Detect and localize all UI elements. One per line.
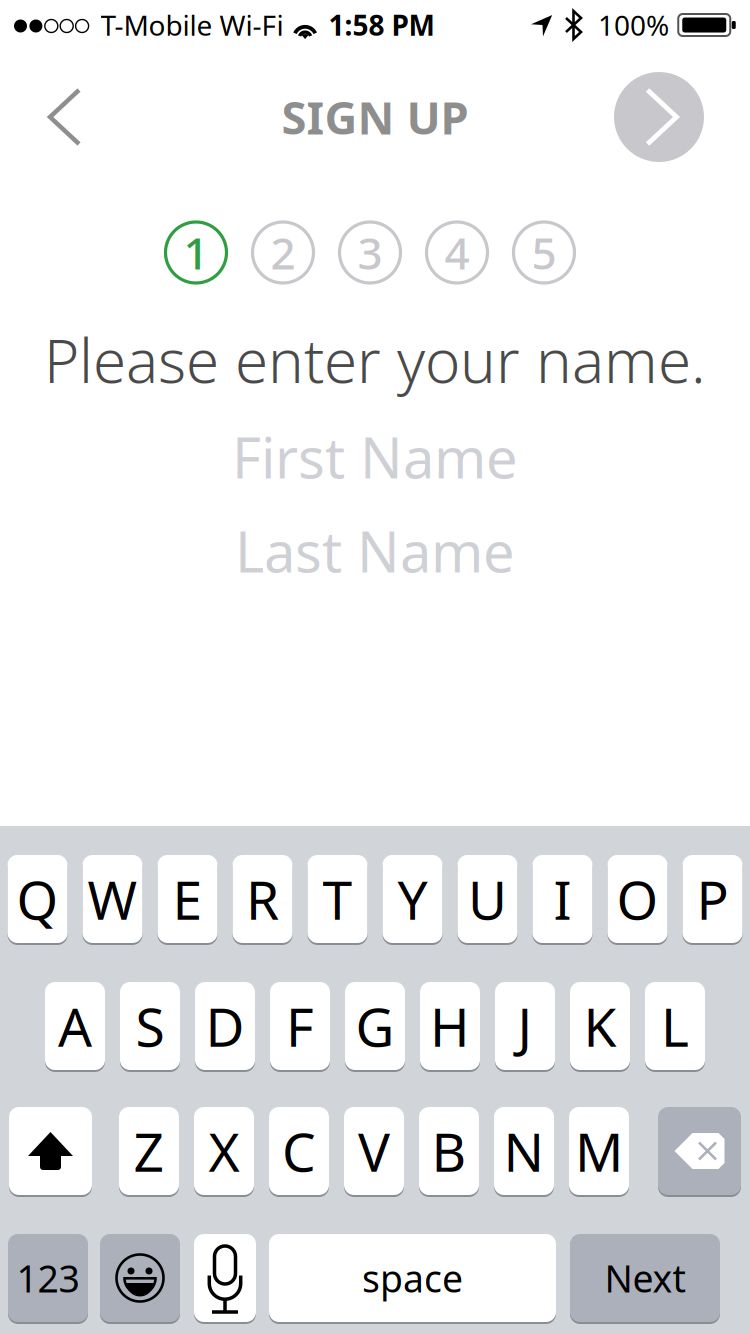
button[interactable]: A — [45, 981, 105, 1071]
button[interactable]: Shift — [9, 1106, 92, 1196]
staticText: M — [575, 1116, 623, 1186]
staticText: 4 — [444, 223, 469, 282]
staticText: R — [246, 864, 279, 934]
button[interactable]: Emoji — [100, 1233, 180, 1323]
button[interactable]: J — [495, 981, 555, 1071]
staticText: I — [553, 864, 571, 934]
staticText: 2 — [270, 223, 295, 282]
button[interactable]: Y — [382, 854, 442, 944]
button[interactable]: I — [532, 854, 592, 944]
staticText: 1 — [183, 223, 208, 282]
button[interactable]: U — [457, 854, 517, 944]
staticText: B — [431, 1116, 466, 1186]
staticText: P — [696, 864, 728, 934]
button[interactable]: space — [269, 1233, 556, 1323]
button[interactable]: Dictation — [194, 1233, 256, 1323]
staticText: E — [172, 864, 202, 934]
button[interactable]: W — [82, 854, 142, 944]
staticText: Y — [397, 864, 427, 934]
staticText: U — [468, 864, 507, 934]
button[interactable]: B — [419, 1106, 479, 1196]
button[interactable]: F — [270, 981, 330, 1071]
button[interactable]: Back — [0, 62, 150, 172]
staticText: T-Mobile Wi-Fi — [101, 6, 284, 44]
staticText: C — [282, 1116, 316, 1186]
button[interactable]: First Name — [0, 424, 750, 490]
button[interactable]: Delete — [658, 1106, 741, 1196]
button[interactable]: N — [494, 1106, 554, 1196]
staticText: S — [135, 991, 164, 1061]
button[interactable]: Step 4 — [426, 222, 487, 283]
button[interactable]: O — [607, 854, 667, 944]
button[interactable]: L — [645, 981, 705, 1071]
staticText: O — [616, 864, 658, 934]
button[interactable]: Next — [600, 62, 750, 172]
staticText: First Name — [232, 419, 518, 494]
staticText: space — [362, 1253, 463, 1303]
button[interactable]: T — [307, 854, 367, 944]
button[interactable]: Q — [7, 854, 67, 944]
staticText: H — [430, 991, 470, 1061]
button[interactable]: P — [682, 854, 742, 944]
staticText: V — [358, 1116, 390, 1186]
button[interactable]: M — [569, 1106, 629, 1196]
staticText: Z — [133, 1116, 164, 1186]
button[interactable]: 123 — [8, 1233, 88, 1323]
button[interactable]: X — [194, 1106, 254, 1196]
staticText: 3 — [357, 223, 382, 282]
button[interactable]: D — [195, 981, 255, 1071]
button[interactable]: V — [344, 1106, 404, 1196]
staticText: X — [208, 1116, 239, 1186]
staticText: T — [322, 864, 352, 934]
button[interactable]: G — [345, 981, 405, 1071]
button[interactable]: R — [232, 854, 292, 944]
button[interactable]: K — [570, 981, 630, 1071]
button[interactable]: Step 1 — [165, 222, 226, 283]
staticText: 100% — [598, 6, 669, 44]
staticText: Q — [16, 864, 58, 934]
staticText: J — [517, 991, 532, 1061]
staticText: G — [355, 991, 394, 1061]
staticText: Next — [604, 1253, 685, 1303]
button[interactable]: S — [120, 981, 180, 1071]
button[interactable]: Step 2 — [252, 222, 313, 283]
button[interactable]: E — [157, 854, 217, 944]
staticText: Please enter your name. — [44, 320, 706, 400]
staticText: F — [286, 991, 314, 1061]
button[interactable]: C — [269, 1106, 329, 1196]
button[interactable]: H — [420, 981, 480, 1071]
staticText: L — [661, 991, 689, 1061]
staticText: W — [87, 864, 137, 934]
button[interactable]: Z — [119, 1106, 179, 1196]
button[interactable]: Step 5 — [513, 222, 574, 283]
staticText: K — [583, 991, 616, 1061]
staticText: 1:58 PM — [329, 6, 435, 44]
staticText: N — [503, 1116, 544, 1186]
staticText: SIGN UP — [281, 87, 468, 147]
staticText: D — [205, 991, 244, 1061]
button[interactable]: Last Name — [0, 518, 750, 584]
staticText: Last Name — [235, 513, 515, 588]
staticText: 5 — [531, 223, 556, 282]
button[interactable]: Next — [570, 1233, 720, 1323]
staticText: 123 — [16, 1253, 79, 1303]
button[interactable]: Step 3 — [339, 222, 400, 283]
staticText: A — [58, 991, 92, 1061]
